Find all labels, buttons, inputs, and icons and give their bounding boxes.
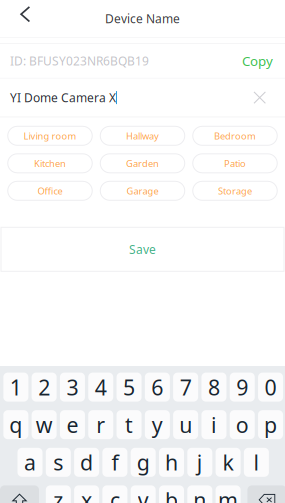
button[interactable] — [247, 485, 285, 503]
staticText: 5 — [123, 373, 135, 401]
button[interactable]: r — [88, 410, 113, 439]
button[interactable]: g — [131, 448, 156, 477]
staticText: k — [223, 448, 234, 476]
button[interactable]: p — [258, 410, 283, 439]
button[interactable]: v — [131, 485, 156, 503]
button[interactable]: i — [201, 410, 226, 439]
staticText: e — [66, 410, 78, 439]
staticText: Kitchen — [34, 157, 66, 169]
staticText: j — [197, 448, 203, 476]
button[interactable]: k — [216, 448, 241, 477]
staticText: n — [193, 486, 206, 503]
staticText: Living room — [23, 130, 76, 142]
button[interactable]: 0 — [258, 373, 283, 402]
staticText: w — [36, 410, 53, 439]
button[interactable]: Hallway — [100, 126, 185, 145]
staticText: Office — [37, 185, 62, 197]
staticText: r — [96, 410, 105, 439]
button[interactable]: Garage — [100, 181, 185, 200]
staticText: u — [179, 410, 192, 439]
staticText: Save — [129, 241, 156, 257]
button[interactable]: y — [145, 410, 170, 439]
staticText: 0 — [265, 373, 277, 401]
staticText: o — [236, 410, 249, 439]
button[interactable]: Office — [8, 181, 92, 200]
staticText: q — [9, 410, 22, 439]
button[interactable] — [0, 485, 39, 503]
button[interactable]: f — [102, 448, 127, 477]
button[interactable]: s — [46, 448, 71, 477]
button[interactable]: l — [244, 448, 269, 477]
button[interactable]: 4 — [88, 373, 113, 402]
button[interactable]: Bedroom — [193, 126, 277, 145]
staticText: 8 — [208, 373, 220, 401]
staticText: 7 — [180, 373, 192, 401]
button[interactable]: Clear text — [253, 83, 275, 113]
staticText: 2 — [38, 373, 50, 401]
button[interactable]: Copy — [240, 46, 275, 76]
button[interactable]: o — [230, 410, 255, 439]
staticText: Storage — [218, 185, 252, 197]
button[interactable]: z — [46, 485, 71, 503]
button[interactable]: 3 — [60, 373, 85, 402]
button[interactable]: 5 — [116, 373, 141, 402]
button[interactable]: Save — [1, 227, 284, 271]
button[interactable]: b — [159, 485, 184, 503]
button[interactable]: 2 — [32, 373, 57, 402]
staticText: 1 — [10, 373, 22, 401]
staticText: t — [125, 410, 133, 439]
staticText: d — [80, 448, 93, 476]
staticText: Bedroom — [214, 130, 256, 142]
staticText: a — [24, 448, 36, 476]
staticText: c — [110, 486, 120, 503]
staticText: m — [218, 486, 238, 503]
staticText: Patio — [224, 157, 246, 169]
staticText: x — [81, 486, 92, 503]
button[interactable]: u — [173, 410, 198, 439]
staticText: v — [138, 486, 149, 503]
button[interactable]: 7 — [173, 373, 198, 402]
staticText: i — [211, 410, 217, 439]
button[interactable]: 6 — [145, 373, 170, 402]
staticText: p — [264, 410, 277, 439]
button[interactable]: a — [17, 448, 42, 477]
button[interactable]: n — [187, 485, 212, 503]
staticText: Garage — [126, 185, 158, 197]
staticText: b — [165, 486, 178, 503]
staticText: 6 — [151, 373, 163, 401]
staticText: 9 — [236, 373, 248, 401]
staticText: Copy — [242, 52, 273, 70]
button[interactable]: t — [116, 410, 141, 439]
button[interactable]: m — [216, 485, 241, 503]
button[interactable]: 8 — [201, 373, 226, 402]
staticText: Hallway — [126, 130, 159, 142]
button[interactable]: Living room — [8, 126, 92, 145]
staticText: f — [111, 448, 118, 476]
staticText: s — [53, 448, 63, 476]
staticText: Garden — [126, 157, 159, 169]
button[interactable]: q — [3, 410, 28, 439]
staticText: Device Name — [105, 10, 180, 26]
button[interactable]: 1 — [3, 373, 28, 402]
button[interactable]: c — [102, 485, 127, 503]
button[interactable]: x — [74, 485, 99, 503]
staticText: l — [253, 448, 259, 476]
staticText: h — [165, 448, 178, 476]
button[interactable]: Garden — [100, 154, 185, 173]
button[interactable]: Kitchen — [8, 154, 92, 173]
button[interactable]: e — [60, 410, 85, 439]
staticText: 4 — [95, 373, 107, 401]
button[interactable]: w — [32, 410, 57, 439]
staticText: g — [137, 448, 150, 476]
staticText: 3 — [66, 373, 78, 401]
staticText: z — [53, 486, 63, 503]
button[interactable]: j — [187, 448, 212, 477]
staticText: y — [152, 410, 163, 439]
button[interactable]: 9 — [230, 373, 255, 402]
button[interactable]: Patio — [193, 154, 277, 173]
button[interactable]: Storage — [193, 181, 277, 200]
button[interactable]: Back — [0, 0, 42, 37]
staticText: YI Dome Camera X — [10, 90, 116, 105]
button[interactable]: h — [159, 448, 184, 477]
button[interactable]: d — [74, 448, 99, 477]
